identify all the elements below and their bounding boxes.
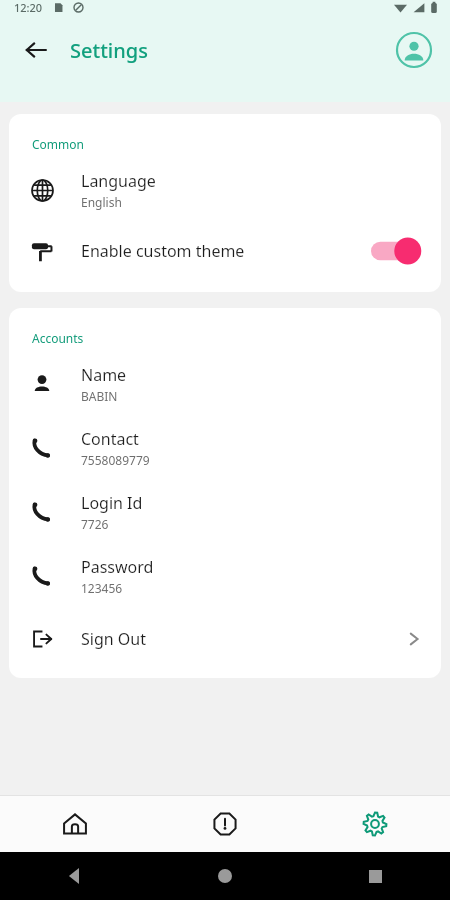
staticText: English [81, 194, 122, 210]
button[interactable]: Home [0, 796, 150, 852]
button[interactable]: Language [9, 158, 441, 222]
button[interactable]: Contact [9, 416, 441, 480]
staticText: Language [81, 170, 156, 192]
staticText: Contact [81, 428, 139, 450]
staticText: Accounts [32, 330, 84, 346]
staticText: Settings [70, 37, 148, 64]
staticText: Name [81, 364, 127, 386]
staticText: Common [32, 136, 84, 152]
button[interactable]: Name [9, 352, 441, 416]
staticText: 123456 [81, 580, 123, 596]
button[interactable]: Sign Out [9, 608, 441, 664]
staticText: Password [81, 556, 154, 578]
staticText: Login Id [81, 492, 143, 514]
staticText: 7558089779 [81, 452, 150, 468]
staticText: 7726 [81, 516, 109, 532]
button[interactable]: Password [9, 544, 441, 608]
staticText: Enable custom theme [81, 240, 245, 262]
button[interactable]: Enable custom theme [9, 228, 441, 274]
button[interactable]: Profile [392, 28, 436, 72]
button[interactable]: Login Id [9, 480, 441, 544]
button[interactable]: Back [14, 28, 58, 72]
staticText: Sign Out [81, 628, 146, 650]
button[interactable]: Settings [300, 796, 450, 852]
button[interactable]: Alerts [150, 796, 300, 852]
button[interactable]: Enable custom theme toggle [371, 236, 423, 266]
staticText: 12:20 [14, 0, 43, 15]
staticText: BABIN [81, 388, 118, 404]
